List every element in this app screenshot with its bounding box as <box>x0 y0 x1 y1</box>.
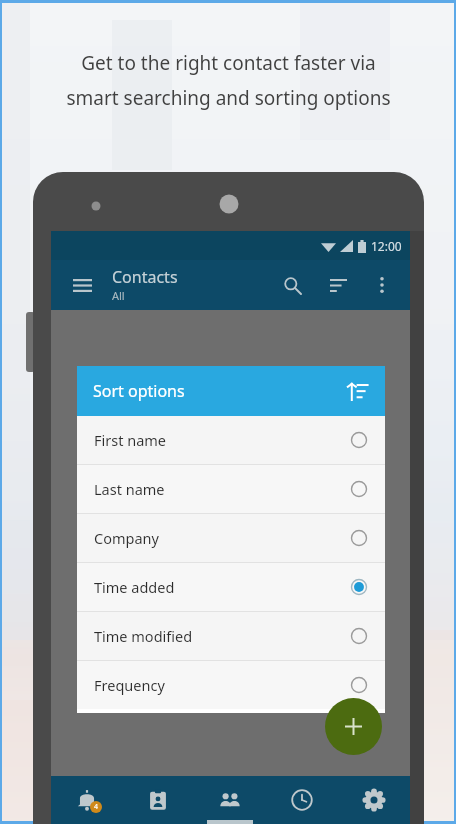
button[interactable]: Sort <box>320 267 356 303</box>
button[interactable]: Notifications <box>51 776 122 824</box>
button[interactable]: More options <box>364 267 400 303</box>
button[interactable]: Sort options <box>77 366 385 416</box>
button[interactable]: Company <box>77 514 385 562</box>
button[interactable]: Contacts <box>194 776 266 824</box>
staticText: Time modified <box>94 626 193 646</box>
staticText: Sort options <box>93 380 185 402</box>
button[interactable]: Frequency <box>77 661 385 709</box>
button[interactable]: Last name <box>77 465 385 513</box>
staticText: Company <box>94 528 159 548</box>
staticText: 4 <box>94 802 99 812</box>
staticText: smart searching and sorting options <box>66 85 391 111</box>
staticText: Get to the right contact faster via <box>81 50 376 76</box>
staticText: Time added <box>94 577 175 597</box>
staticText: Last name <box>94 479 165 499</box>
button[interactable]: My card <box>122 776 194 824</box>
staticText: Contacts <box>112 266 178 288</box>
staticText: 12:00 <box>371 238 402 254</box>
button[interactable]: Settings <box>338 776 410 824</box>
staticText: Frequency <box>94 675 165 695</box>
button[interactable]: Open navigation drawer <box>67 270 97 300</box>
button[interactable]: First name <box>77 416 385 464</box>
button[interactable]: Recents <box>266 776 338 824</box>
button[interactable]: Search <box>274 267 310 303</box>
button[interactable]: Time added <box>77 563 385 611</box>
staticText: First name <box>94 430 167 450</box>
button[interactable]: Time modified <box>77 612 385 660</box>
staticText: All <box>112 288 125 303</box>
button[interactable]: Add contact <box>325 698 382 755</box>
